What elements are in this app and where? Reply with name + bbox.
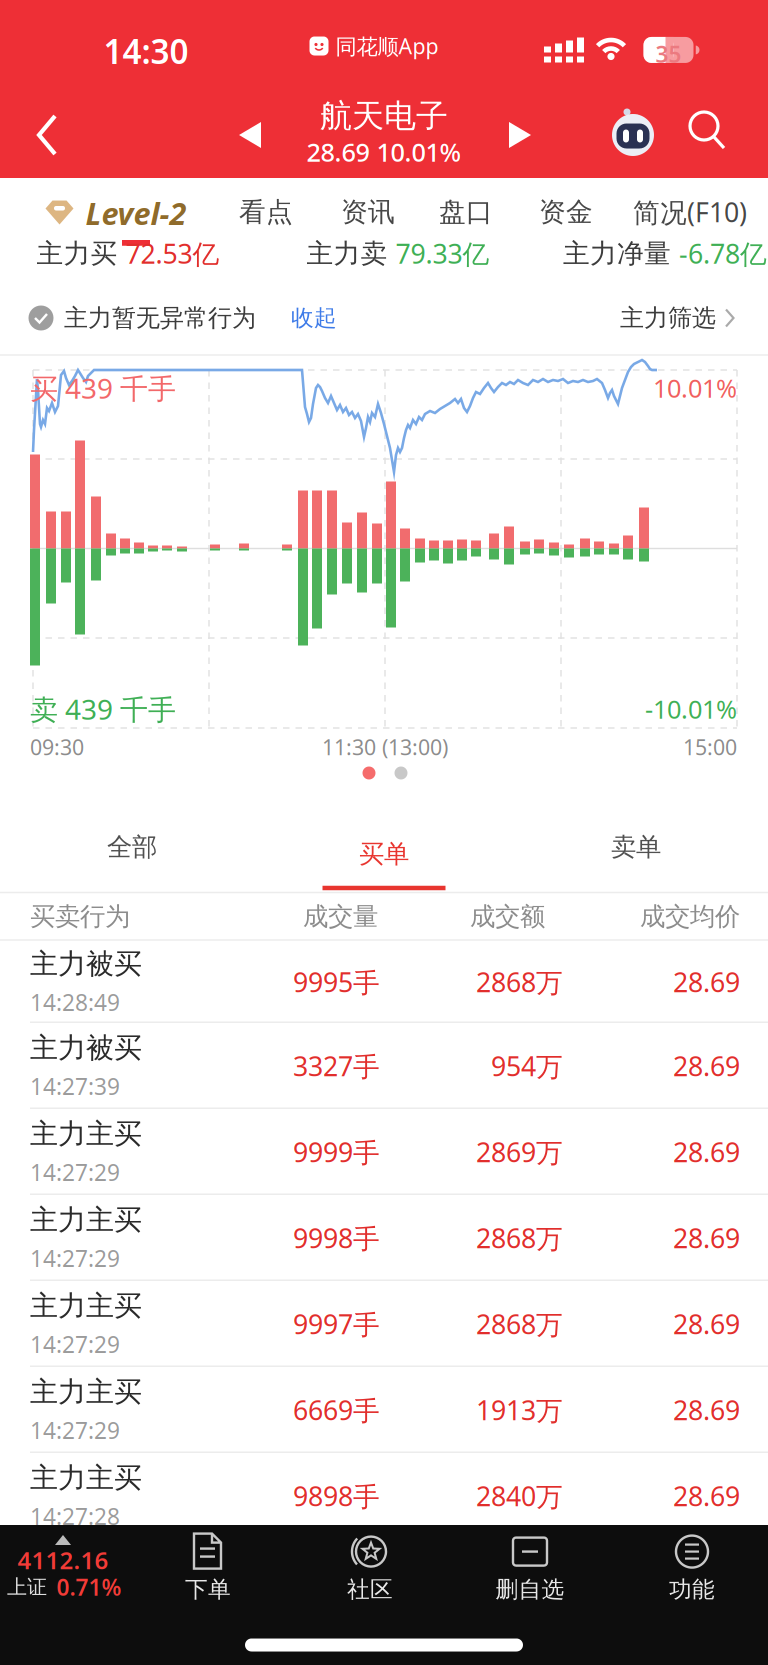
staticText: 4112.16 [17, 1544, 108, 1576]
staticText: 14:30 [103, 29, 188, 73]
staticText: 28.69 [673, 964, 740, 1000]
staticText: 954万 [491, 1048, 563, 1084]
button[interactable]: Previous stock [237, 122, 263, 148]
staticText: 9995手 [293, 964, 380, 1000]
staticText: 28.69 [673, 1392, 740, 1428]
staticText: 主力暂无异常行为 [64, 303, 256, 333]
staticText: 主力净量 [563, 237, 671, 270]
staticText: 全部 [107, 831, 157, 862]
staticText: Level-2 [85, 192, 186, 234]
staticText: 成交量 [303, 901, 378, 932]
staticText: 看点 [239, 196, 293, 228]
staticText: 上证 [7, 1575, 47, 1599]
staticText: 2869万 [476, 1134, 563, 1170]
staticText: 2868万 [476, 1220, 563, 1256]
button[interactable]: 卖单 [508, 800, 764, 894]
button[interactable]: 资金 [539, 196, 593, 228]
staticText: 10.01% [653, 371, 737, 405]
button[interactable]: 简况(F10) [633, 194, 747, 230]
staticText: 航天电子 [320, 96, 448, 136]
staticText: 2840万 [476, 1478, 563, 1514]
staticText: 3327手 [293, 1048, 380, 1084]
staticText: 11:30 (13:00) [322, 733, 448, 761]
staticText: 主力主买 [30, 1203, 142, 1237]
button[interactable]: 买单 [256, 800, 512, 894]
button[interactable]: 全部 [4, 800, 260, 894]
staticText: 14:27:29 [30, 1415, 120, 1445]
staticText: 同花顺App [335, 32, 438, 60]
staticText: -6.78亿 [679, 236, 767, 271]
staticText: 9999手 [293, 1134, 380, 1170]
staticText: -10.01% [645, 692, 737, 726]
staticText: 28.69 10.01% [306, 135, 461, 169]
staticText: 卖单 [611, 831, 661, 862]
staticText: 79.33亿 [395, 236, 489, 271]
button[interactable]: Level-2 [45, 192, 186, 234]
staticText: 删自选 [495, 1576, 564, 1603]
button[interactable]: Search [688, 111, 732, 155]
staticText: 卖 439 千手 [30, 690, 176, 728]
staticText: 下单 [185, 1576, 231, 1603]
button[interactable]: 社区 [295, 1525, 445, 1611]
staticText: 2868万 [476, 1306, 563, 1342]
staticText: 9998手 [293, 1220, 380, 1256]
staticText: 9997手 [293, 1306, 380, 1342]
staticText: 资金 [539, 196, 593, 228]
staticText: 35 [655, 39, 681, 69]
button[interactable]: 主力筛选 [620, 303, 736, 333]
staticText: 14:27:29 [30, 1329, 120, 1359]
staticText: 社区 [347, 1576, 393, 1603]
staticText: 主力筛选 [620, 303, 716, 333]
staticText: 14:27:28 [30, 1501, 120, 1531]
staticText: 14:27:29 [30, 1157, 120, 1187]
staticText: 主力卖 [306, 237, 387, 270]
staticText: 主力买 [36, 237, 117, 270]
staticText: 盘口 [439, 196, 493, 228]
staticText: 0.71% [56, 1572, 121, 1602]
staticText: 09:30 [30, 733, 84, 761]
staticText: 15:00 [683, 733, 737, 761]
staticText: 28.69 [673, 1306, 740, 1342]
staticText: 72.53亿 [125, 236, 219, 271]
staticText: 9898手 [293, 1478, 380, 1514]
staticText: 简况(F10) [633, 194, 747, 230]
staticText: 主力主买 [30, 1117, 142, 1151]
staticText: 成交额 [470, 901, 545, 932]
staticText: 买卖行为 [30, 901, 130, 932]
staticText: 28.69 [673, 1134, 740, 1170]
staticText: 2868万 [476, 964, 563, 1000]
staticText: 1913万 [476, 1392, 563, 1428]
staticText: 收起 [291, 304, 337, 332]
button[interactable]: 看点 [239, 196, 293, 228]
staticText: 资讯 [341, 196, 395, 228]
staticText: 主力被买 [30, 947, 142, 981]
staticText: 14:27:39 [30, 1071, 120, 1101]
staticText: 14:27:29 [30, 1243, 120, 1273]
button[interactable]: 功能 [617, 1525, 767, 1611]
staticText: 功能 [669, 1576, 715, 1603]
button[interactable]: 删自选 [455, 1525, 605, 1611]
button[interactable]: Next stock [507, 122, 533, 148]
button[interactable]: 收起 [291, 304, 337, 332]
button[interactable]: AI assistant [610, 108, 656, 158]
button[interactable]: Back [21, 108, 91, 162]
staticText: 主力主买 [30, 1461, 142, 1495]
staticText: 主力主买 [30, 1375, 142, 1409]
staticText: 28.69 [673, 1048, 740, 1084]
staticText: 6669手 [293, 1392, 380, 1428]
staticText: 买 439 千手 [30, 369, 176, 407]
button[interactable]: 4112.16 [0, 1525, 136, 1665]
staticText: 成交均价 [640, 901, 740, 932]
staticText: 28.69 [673, 1220, 740, 1256]
staticText: 主力主买 [30, 1289, 142, 1323]
button[interactable]: 下单 [133, 1525, 283, 1611]
staticText: 买单 [359, 838, 409, 869]
button[interactable]: 盘口 [439, 196, 493, 228]
staticText: 14:28:49 [30, 987, 120, 1017]
button[interactable]: 资讯 [341, 196, 395, 228]
staticText: 28.69 [673, 1478, 740, 1514]
staticText: 主力被买 [30, 1031, 142, 1065]
